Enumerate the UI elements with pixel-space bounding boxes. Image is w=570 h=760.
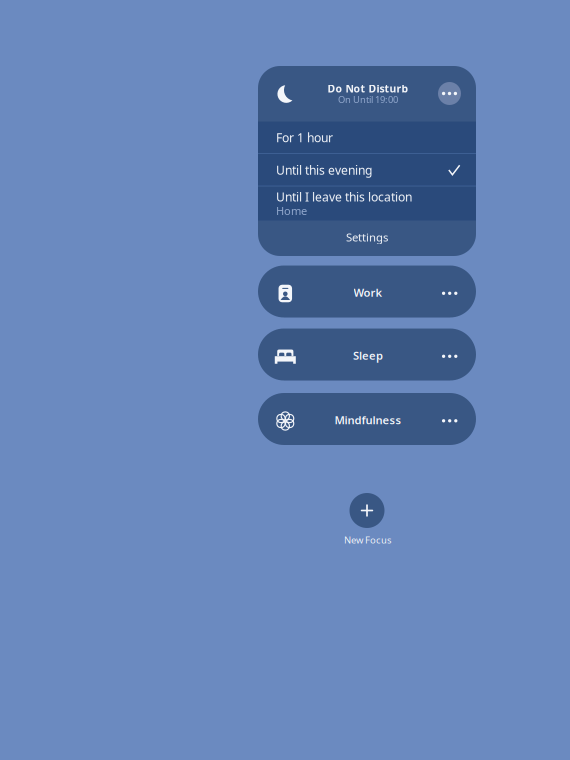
staticText: Mindfulness	[334, 413, 401, 427]
button[interactable]: Sleep	[258, 328, 476, 380]
button[interactable]: Mindfulness	[258, 393, 476, 445]
staticText: New Focus	[344, 533, 392, 546]
staticText: Until I leave this location	[276, 189, 412, 205]
staticText: For 1 hour	[276, 129, 333, 145]
button[interactable]: For 1 hour	[258, 122, 476, 153]
staticText: Home	[276, 203, 307, 218]
button[interactable]: Until I leave this location	[258, 186, 476, 220]
staticText: On Until 19:00	[338, 93, 398, 106]
button[interactable]: Work	[258, 265, 476, 317]
staticText: Do Not Disturb	[327, 82, 408, 95]
staticText: Work	[353, 285, 382, 300]
button[interactable]: New Focus	[322, 493, 412, 553]
staticText: Sleep	[353, 348, 383, 363]
button[interactable]: More options	[438, 82, 461, 105]
staticText: Settings	[346, 229, 388, 244]
button[interactable]: Until this evening	[258, 154, 476, 186]
staticText: Until this evening	[276, 162, 372, 178]
button[interactable]: Settings	[258, 221, 476, 256]
